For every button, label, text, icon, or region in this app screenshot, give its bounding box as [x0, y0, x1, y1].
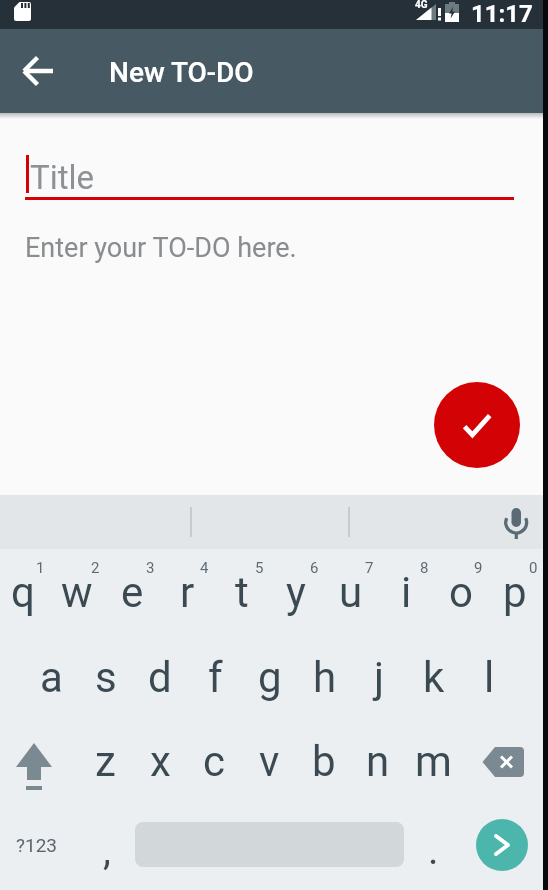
button[interactable]: z	[78, 729, 132, 793]
button[interactable]: 1	[25, 555, 55, 581]
staticText: h	[313, 653, 337, 702]
staticText: p	[503, 568, 527, 617]
staticText: u	[339, 568, 363, 617]
button[interactable]: 3	[135, 555, 165, 581]
staticText: Title	[30, 158, 95, 197]
staticText: 7	[365, 559, 374, 577]
staticText: 6	[310, 559, 319, 577]
staticText: k	[423, 653, 445, 702]
staticText: Enter your TO-DO here.	[25, 232, 297, 264]
staticText: 5	[255, 559, 264, 577]
staticText: a	[40, 653, 63, 702]
button[interactable]: .	[406, 818, 460, 882]
button[interactable]: a	[24, 645, 78, 709]
button[interactable]: m	[406, 729, 460, 793]
button[interactable]: x	[133, 729, 187, 793]
button[interactable]: 8	[409, 555, 439, 581]
staticText: z	[95, 737, 116, 786]
staticText: 0	[529, 559, 538, 577]
button[interactable]: e	[105, 560, 159, 624]
staticText: x	[150, 737, 171, 786]
button[interactable]: 0	[518, 555, 548, 581]
staticText: .	[428, 827, 439, 874]
staticText: i	[401, 568, 412, 617]
button[interactable]: d	[133, 645, 187, 709]
button[interactable]	[14, 47, 62, 95]
staticText: y	[286, 568, 306, 617]
staticText: 1	[36, 559, 45, 577]
staticText: 8	[420, 559, 429, 577]
button[interactable]: g	[243, 645, 297, 709]
staticText: 9	[474, 559, 483, 577]
staticText: q	[11, 568, 35, 617]
button[interactable]: b	[297, 729, 351, 793]
staticText: w	[61, 568, 93, 617]
button[interactable]	[480, 744, 528, 780]
staticText: 4	[200, 559, 209, 577]
staticText: s	[95, 653, 117, 702]
button[interactable]: p	[488, 560, 542, 624]
staticText: ,	[103, 827, 111, 874]
staticText: r	[180, 568, 195, 617]
button[interactable]: y	[269, 560, 323, 624]
staticText: n	[366, 737, 390, 786]
staticText: 11:17	[471, 0, 533, 28]
button[interactable]: k	[407, 645, 461, 709]
button[interactable]: h	[298, 645, 352, 709]
staticText: ?123	[16, 834, 58, 856]
staticText: d	[148, 653, 172, 702]
button[interactable]: 2	[80, 555, 110, 581]
staticText: o	[449, 568, 473, 617]
button[interactable]: 4	[189, 555, 219, 581]
button[interactable]: 9	[463, 555, 493, 581]
button[interactable]	[434, 382, 520, 468]
staticText: c	[203, 737, 225, 786]
staticText: g	[258, 653, 282, 702]
button[interactable]: o	[434, 560, 488, 624]
button[interactable]: v	[242, 729, 296, 793]
button[interactable]	[10, 736, 58, 796]
button[interactable]: ?123	[2, 815, 72, 875]
staticText: e	[121, 568, 144, 617]
staticText: t	[235, 568, 249, 617]
staticText: l	[484, 653, 495, 702]
staticText: 3	[146, 559, 155, 577]
button[interactable]: 7	[354, 555, 384, 581]
staticText: v	[259, 737, 280, 786]
button[interactable]: u	[324, 560, 378, 624]
button[interactable]: w	[50, 560, 104, 624]
button[interactable]	[498, 504, 534, 542]
button[interactable]: r	[160, 560, 214, 624]
staticText: b	[312, 737, 336, 786]
button[interactable]: i	[379, 560, 433, 624]
button[interactable]: f	[188, 645, 242, 709]
button[interactable]: q	[0, 560, 50, 624]
staticText: New TO-DO	[109, 56, 254, 89]
button[interactable]: l	[462, 645, 516, 709]
button[interactable]	[476, 819, 528, 871]
button[interactable]	[0, 495, 548, 549]
button[interactable]: t	[215, 560, 269, 624]
button[interactable]: n	[351, 729, 405, 793]
button[interactable]: s	[79, 645, 133, 709]
staticText: j	[374, 653, 385, 702]
button[interactable]: 5	[244, 555, 274, 581]
button[interactable]: j	[352, 645, 406, 709]
staticText: 4G	[415, 0, 428, 11]
button[interactable]: c	[187, 729, 241, 793]
button[interactable]: ,	[80, 818, 134, 882]
staticText: f	[208, 653, 223, 702]
staticText: m	[415, 737, 452, 786]
button[interactable]: 6	[299, 555, 329, 581]
staticText: 2	[91, 559, 100, 577]
